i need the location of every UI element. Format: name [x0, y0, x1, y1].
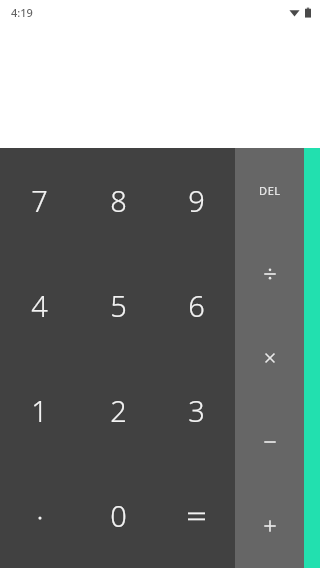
button[interactable]: 7 — [0, 148, 79, 253]
staticText: DEL — [259, 183, 281, 198]
button[interactable]: 1 — [0, 358, 79, 463]
staticText: 7 — [31, 181, 48, 220]
button[interactable]: Decimal point — [0, 463, 79, 568]
staticText: 5 — [110, 286, 127, 325]
button[interactable]: Multiply — [235, 316, 304, 400]
button[interactable]: 9 — [157, 148, 235, 253]
button[interactable]: Subtract — [235, 400, 304, 484]
staticText: 3 — [188, 391, 205, 430]
staticText: 1 — [31, 391, 48, 430]
button[interactable]: 0 — [79, 463, 157, 568]
button[interactable]: Add — [235, 484, 304, 568]
staticText: 6 — [188, 286, 205, 325]
staticText: 8 — [110, 181, 127, 220]
staticText: 9 — [188, 181, 205, 220]
button[interactable]: 3 — [157, 358, 235, 463]
staticText: 2 — [110, 391, 127, 430]
staticText: 4:19 — [11, 5, 33, 20]
button[interactable]: Equals — [157, 463, 235, 568]
button[interactable]: 6 — [157, 253, 235, 358]
button[interactable]: 4 — [0, 253, 79, 358]
button[interactable]: 2 — [79, 358, 157, 463]
button[interactable]: 8 — [79, 148, 157, 253]
staticText: 4 — [31, 286, 48, 325]
button[interactable]: Divide — [235, 232, 304, 316]
button[interactable]: 5 — [79, 253, 157, 358]
staticText: 0 — [110, 496, 127, 535]
button[interactable]: Delete — [235, 148, 304, 232]
